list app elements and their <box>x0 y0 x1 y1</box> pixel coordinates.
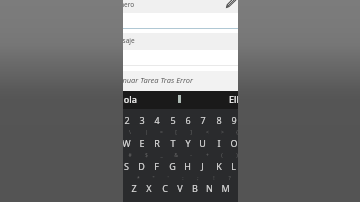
button[interactable]: I <box>211 136 226 149</box>
button[interactable]: X <box>141 181 156 194</box>
staticText: S <box>124 160 129 172</box>
button[interactable]: K <box>211 159 226 172</box>
staticText: ; <box>197 175 199 182</box>
staticText: D <box>138 160 145 172</box>
staticText: B <box>192 182 198 194</box>
button[interactable]: 2 <box>123 113 134 126</box>
button[interactable]: Ella <box>229 90 238 108</box>
button[interactable]: Continuar Tarea Tras Error <box>123 70 220 90</box>
staticText: = <box>160 129 163 136</box>
staticText: 7 <box>200 114 206 126</box>
staticText: M <box>221 182 230 194</box>
button[interactable]: T <box>165 136 180 149</box>
staticText: 4 <box>154 114 160 126</box>
staticText: \ <box>129 129 131 136</box>
staticText: | <box>145 129 148 136</box>
button[interactable]: C <box>157 181 172 194</box>
button[interactable]: H <box>180 159 195 172</box>
staticText: ) <box>236 152 238 159</box>
button[interactable]: 4 <box>149 113 164 126</box>
button[interactable]: G <box>165 159 180 172</box>
staticText: - <box>190 152 192 159</box>
staticText: ? <box>228 175 231 182</box>
staticText: 9 <box>231 114 237 126</box>
staticText: 6 <box>185 114 191 126</box>
button[interactable]: B <box>187 181 202 194</box>
staticText: ! <box>213 175 215 182</box>
staticText: Mensaje <box>123 36 135 45</box>
staticText: _ <box>160 152 163 159</box>
staticText: > <box>221 129 224 136</box>
button[interactable]: Edit <box>226 0 236 8</box>
staticText: H <box>184 160 191 172</box>
staticText: L <box>231 160 236 172</box>
staticText: ' <box>167 175 169 182</box>
staticText: : <box>182 175 184 182</box>
button[interactable]: J <box>195 159 210 172</box>
staticText: Continuar Tarea Tras Error <box>123 75 194 85</box>
button[interactable]: Z <box>126 181 141 194</box>
staticText: Ella <box>229 93 238 105</box>
staticText: # <box>128 152 132 159</box>
staticText: V <box>177 182 183 194</box>
button[interactable]: F <box>149 159 164 172</box>
button[interactable]: S <box>123 159 134 172</box>
staticText: * <box>137 175 140 182</box>
staticText: { <box>236 129 238 136</box>
staticText: Y <box>185 137 191 149</box>
button[interactable]: Número <box>123 0 169 11</box>
button[interactable]: V <box>172 181 187 194</box>
staticText: G <box>169 160 176 172</box>
staticText: $ <box>145 152 148 159</box>
staticText: Hola <box>123 93 137 105</box>
staticText: 5 <box>170 114 176 126</box>
button[interactable]: D <box>134 159 149 172</box>
button[interactable]: Mensaje <box>123 32 169 49</box>
staticText: Z <box>131 182 137 194</box>
button[interactable]: 8 <box>211 113 226 126</box>
staticText: 8 <box>216 114 222 126</box>
button[interactable]: 7 <box>195 113 210 126</box>
staticText: 2 <box>124 114 130 126</box>
button[interactable]: Y <box>180 136 195 149</box>
button[interactable]: N <box>202 181 217 194</box>
button[interactable]: R <box>149 136 164 149</box>
staticText: J <box>201 160 204 172</box>
button[interactable]: 5 <box>165 113 180 126</box>
staticText: F <box>154 160 159 172</box>
button[interactable]: 9 <box>226 113 238 126</box>
staticText: [ <box>175 129 177 136</box>
button[interactable]: O <box>226 136 238 149</box>
staticText: R <box>154 137 160 149</box>
button[interactable]: M <box>218 181 233 194</box>
staticText: 3 <box>139 114 145 126</box>
staticText: T <box>170 137 176 149</box>
button[interactable]: L <box>226 159 238 172</box>
button[interactable]: Hola <box>123 90 157 108</box>
button[interactable]: U <box>195 136 210 149</box>
staticText: W <box>123 137 131 149</box>
staticText: E <box>139 137 145 149</box>
staticText: O <box>230 137 238 149</box>
staticText: N <box>206 182 213 194</box>
staticText: & <box>174 152 178 159</box>
staticText: + <box>206 152 209 159</box>
button[interactable]: E <box>134 136 149 149</box>
staticText: K <box>216 160 222 172</box>
staticText: ] <box>190 129 192 136</box>
staticText: X <box>146 182 152 194</box>
staticText: " <box>152 175 155 182</box>
button[interactable]: 6 <box>180 113 195 126</box>
staticText: C <box>162 182 168 194</box>
staticText: ( <box>221 152 223 159</box>
staticText: < <box>206 129 209 136</box>
staticText: I <box>217 137 221 149</box>
button[interactable]: 3 <box>134 113 149 126</box>
staticText: U <box>199 137 206 149</box>
staticText: Número <box>123 0 135 9</box>
button[interactable]: W <box>123 136 134 149</box>
